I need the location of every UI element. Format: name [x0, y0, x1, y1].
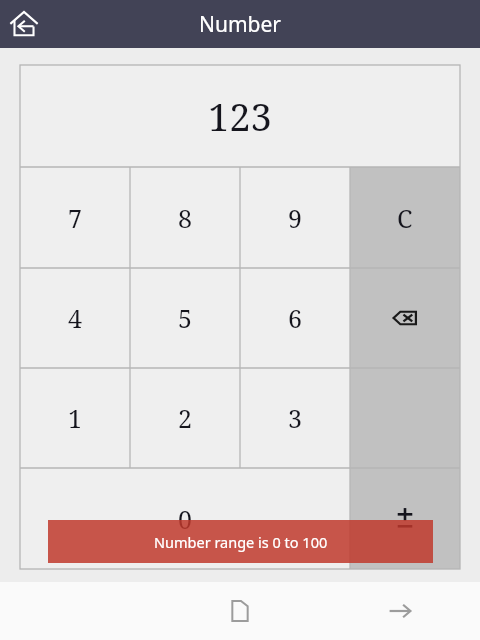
staticText: 1: [68, 401, 82, 435]
button[interactable]: 1: [20, 368, 130, 468]
staticText: 6: [288, 301, 302, 335]
staticText: 8: [178, 201, 192, 235]
button[interactable]: 5: [130, 268, 240, 368]
staticText: 7: [68, 201, 82, 235]
button[interactable]: Plus minus: [350, 468, 460, 569]
staticText: 4: [68, 301, 82, 335]
button[interactable]: Home: [0, 0, 48, 48]
staticText: 0: [178, 502, 192, 536]
staticText: 3: [288, 401, 302, 435]
button[interactable]: C: [350, 167, 460, 268]
button[interactable]: 9: [240, 167, 350, 268]
button[interactable]: 0: [20, 468, 350, 569]
staticText: Number range is 0 to 100: [154, 532, 328, 552]
button[interactable]: 8: [130, 167, 240, 268]
staticText: 9: [288, 201, 302, 235]
button[interactable]: Backspace: [350, 268, 460, 368]
button[interactable]: 6: [240, 268, 350, 368]
button[interactable]: 3: [240, 368, 350, 468]
staticText: 5: [178, 301, 192, 335]
button[interactable]: Next: [372, 583, 428, 639]
button[interactable]: 4: [20, 268, 130, 368]
staticText: C: [397, 201, 413, 235]
button[interactable]: Document: [212, 583, 268, 639]
staticText: 2: [178, 401, 192, 435]
staticText: Number: [199, 10, 282, 39]
button[interactable]: 7: [20, 167, 130, 268]
button[interactable]: 2: [130, 368, 240, 468]
staticText: 123: [208, 90, 272, 142]
